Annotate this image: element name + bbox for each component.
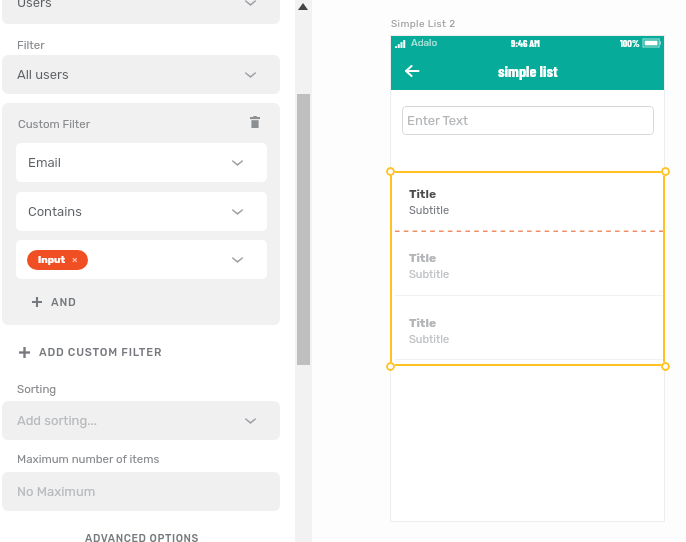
button[interactable]: Users: [2, 0, 280, 24]
staticText: Subtitle: [409, 333, 450, 346]
staticText: All users: [17, 67, 69, 82]
staticText: Filter: [17, 38, 45, 52]
button[interactable]: Delete custom filter: [250, 116, 266, 132]
button[interactable]: ADD CUSTOM FILTER: [19, 341, 163, 363]
staticText: AND: [51, 296, 77, 309]
staticText: Subtitle: [409, 204, 450, 217]
button[interactable]: Title: [390, 296, 665, 360]
staticText: Maximum number of items: [17, 452, 160, 466]
button[interactable]: Input: [16, 240, 267, 279]
button[interactable]: AND: [32, 291, 77, 313]
button[interactable]: All users: [2, 55, 280, 94]
staticText: ADVANCED OPTIONS: [85, 532, 199, 542]
staticText: Custom Filter: [18, 117, 91, 131]
button[interactable]: Title: [390, 231, 665, 296]
button[interactable]: Enter Text: [402, 106, 654, 135]
button[interactable]: Input: [38, 250, 78, 270]
button[interactable]: Add sorting...: [2, 401, 280, 440]
staticText: Sorting: [17, 382, 57, 396]
staticText: Adalo: [411, 37, 438, 49]
button[interactable]: ADVANCED OPTIONS: [0, 528, 283, 542]
staticText: simple list: [498, 61, 558, 80]
staticText: Simple List 2: [391, 18, 456, 30]
staticText: Enter Text: [407, 113, 469, 128]
staticText: ×: [72, 254, 78, 266]
staticText: Subtitle: [409, 268, 450, 281]
staticText: 100%: [620, 37, 640, 49]
staticText: Title: [409, 187, 437, 201]
staticText: 9:46 AM: [511, 37, 540, 49]
staticText: ADD CUSTOM FILTER: [39, 346, 163, 359]
staticText: Title: [409, 316, 437, 330]
staticText: No Maximum: [17, 484, 96, 499]
staticText: Add sorting...: [17, 413, 98, 428]
button[interactable]: Contains: [16, 192, 267, 231]
staticText: Users: [17, 0, 52, 10]
button[interactable]: Email: [16, 143, 267, 182]
staticText: Input: [38, 254, 66, 266]
button[interactable]: No Maximum: [2, 472, 280, 511]
staticText: Email: [28, 155, 61, 170]
staticText: Contains: [28, 204, 82, 219]
button[interactable]: Title: [390, 167, 665, 231]
staticText: Title: [409, 251, 437, 265]
button[interactable]: Back: [396, 52, 428, 90]
